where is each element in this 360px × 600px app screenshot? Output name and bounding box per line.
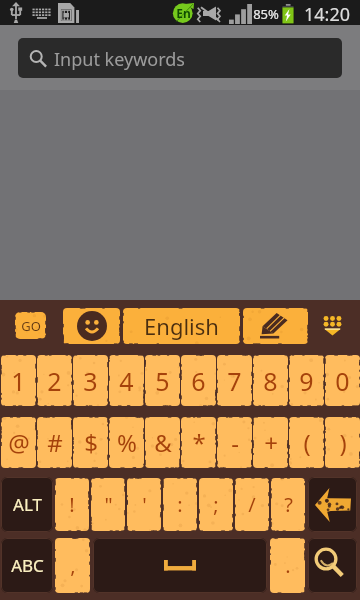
staticText: ' <box>142 491 147 518</box>
staticText: ABC <box>11 554 44 577</box>
staticText: % <box>117 426 137 459</box>
staticText: . <box>285 552 291 579</box>
button[interactable]: Emoji <box>63 308 120 344</box>
button[interactable]: ) <box>325 417 360 468</box>
staticText: $ <box>84 426 98 459</box>
button[interactable]: 7 <box>217 355 252 406</box>
staticText: 85% <box>252 5 280 23</box>
staticText: " <box>104 491 113 518</box>
button[interactable]: ALT <box>1 477 53 532</box>
staticText: 2 <box>47 364 62 398</box>
button[interactable]: ! <box>55 478 89 531</box>
button[interactable]: Backspace <box>308 477 357 532</box>
button[interactable]: 0 <box>325 355 360 406</box>
button[interactable]: Search <box>308 538 357 593</box>
staticText: & <box>154 426 172 459</box>
button[interactable]: , <box>55 538 90 593</box>
button[interactable]: ' <box>127 478 161 531</box>
staticText: ( <box>303 426 311 459</box>
button[interactable]: % <box>109 417 144 468</box>
button[interactable]: - <box>217 417 252 468</box>
button[interactable]: 3 <box>73 355 108 406</box>
button[interactable]: More options <box>310 306 354 344</box>
staticText: 9 <box>299 364 314 398</box>
button[interactable]: ( <box>289 417 324 468</box>
staticText: 5 <box>155 364 170 398</box>
staticText: ! <box>69 491 75 518</box>
button[interactable]: 9 <box>289 355 324 406</box>
staticText: 14:20 <box>301 2 353 27</box>
button[interactable]: # <box>37 417 72 468</box>
button[interactable]: 2 <box>37 355 72 406</box>
staticText: , <box>70 552 76 579</box>
staticText: Input keywords <box>54 47 185 72</box>
button[interactable]: & <box>145 417 180 468</box>
button[interactable]: " <box>91 478 125 531</box>
button[interactable]: $ <box>73 417 108 468</box>
button[interactable]: . <box>270 538 305 593</box>
staticText: 7 <box>227 364 242 398</box>
button[interactable]: 1 <box>1 355 36 406</box>
staticText: 0 <box>335 364 350 398</box>
button[interactable]: ; <box>199 478 233 531</box>
staticText: 6 <box>191 364 206 398</box>
staticText: GO <box>21 317 41 335</box>
staticText: : <box>177 491 183 518</box>
button[interactable]: 8 <box>253 355 288 406</box>
button[interactable]: Space <box>93 538 267 593</box>
button[interactable]: + <box>253 417 288 468</box>
button[interactable]: GO <box>15 312 46 339</box>
staticText: # <box>47 426 63 459</box>
button[interactable]: 5 <box>145 355 180 406</box>
staticText: 8 <box>263 364 278 398</box>
staticText: + <box>264 426 278 459</box>
staticText: - <box>231 426 239 459</box>
button[interactable]: 4 <box>109 355 144 406</box>
staticText: 1 <box>11 364 26 398</box>
staticText: 4 <box>119 364 134 398</box>
staticText: En <box>172 5 195 21</box>
button[interactable]: English <box>123 308 240 344</box>
button[interactable]: Input keywords <box>18 38 342 78</box>
staticText: / <box>248 491 256 518</box>
staticText: ) <box>339 426 347 459</box>
button[interactable]: : <box>163 478 197 531</box>
staticText: * <box>192 426 206 459</box>
staticText: English <box>144 311 219 341</box>
staticText: @ <box>8 426 30 459</box>
button[interactable]: ABC <box>1 538 53 593</box>
button[interactable]: Handwriting <box>243 308 308 344</box>
staticText: ? <box>284 491 293 518</box>
button[interactable]: 6 <box>181 355 216 406</box>
staticText: ALT <box>13 493 42 516</box>
button[interactable]: ? <box>271 478 305 531</box>
button[interactable]: / <box>235 478 269 531</box>
staticText: 3 <box>83 364 98 398</box>
button[interactable]: * <box>181 417 216 468</box>
staticText: ; <box>213 491 219 518</box>
button[interactable]: @ <box>1 417 36 468</box>
